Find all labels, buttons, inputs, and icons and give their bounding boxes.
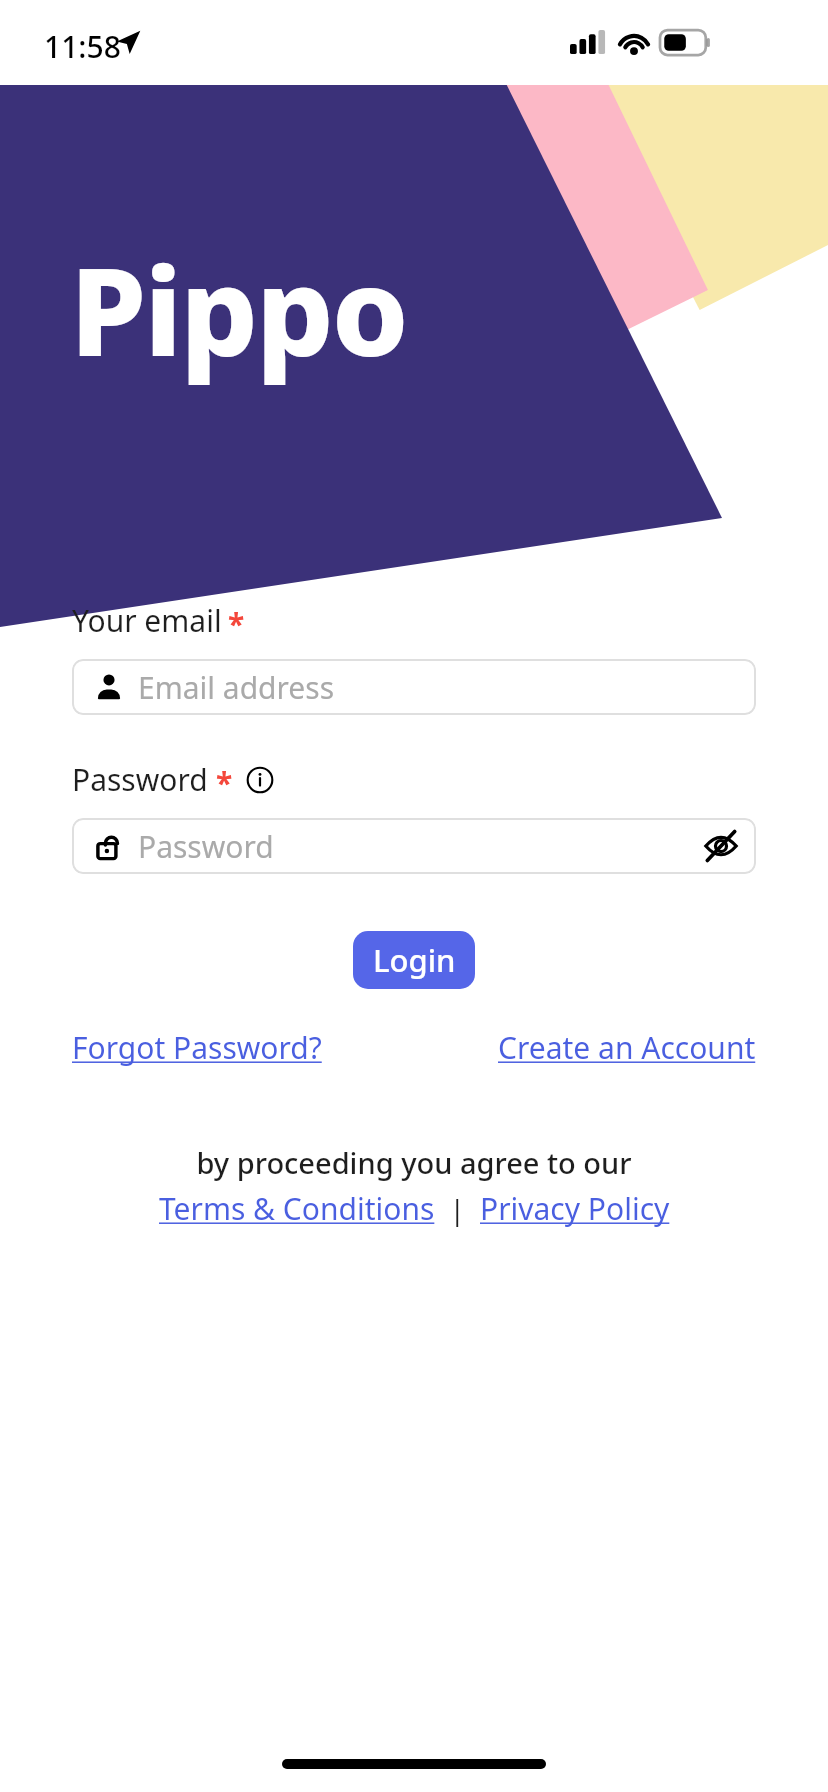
staticText: Password [138, 826, 274, 867]
staticText: Email address [138, 667, 335, 708]
staticText: Login [373, 939, 456, 981]
button[interactable]: Password input [72, 818, 756, 874]
button[interactable]: Password requirements info [245, 765, 275, 795]
button[interactable]: Login [353, 931, 475, 989]
button[interactable]: Privacy Policy [480, 1188, 670, 1229]
staticText: Privacy Policy [480, 1188, 670, 1229]
button[interactable]: Email address input [72, 659, 756, 715]
button[interactable]: Terms & Conditions [159, 1188, 435, 1229]
button[interactable]: Show password [698, 823, 744, 869]
staticText: Forgot Password? [72, 1027, 322, 1068]
staticText: Pippo [70, 226, 407, 392]
staticText: Terms & Conditions [159, 1188, 435, 1229]
staticText: * [216, 762, 233, 803]
staticText: by proceeding you agree to our [0, 1143, 828, 1182]
staticText: * [228, 603, 245, 644]
staticText: | [435, 1190, 480, 1228]
button[interactable]: Create an Account [498, 1027, 756, 1068]
button[interactable]: Forgot Password? [72, 1027, 322, 1068]
staticText: Password [72, 759, 208, 800]
staticText: 11:58 [44, 26, 121, 67]
staticText: Create an Account [498, 1027, 756, 1068]
staticText: Your email [72, 600, 222, 641]
